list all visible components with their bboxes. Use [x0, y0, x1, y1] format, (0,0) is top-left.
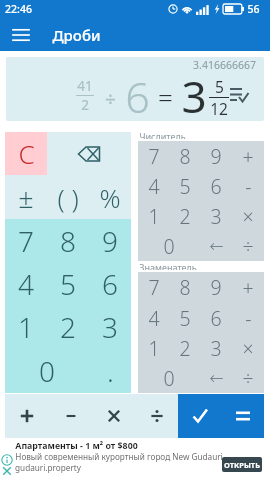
staticText: 4	[148, 305, 160, 332]
staticText: 5	[179, 305, 191, 332]
button[interactable]: Close ad	[1, 465, 13, 477]
button[interactable]: Multiply	[92, 394, 135, 438]
staticText: -	[245, 173, 252, 200]
button[interactable]: History	[230, 86, 250, 106]
button[interactable]: %	[89, 175, 131, 219]
staticText: 3	[210, 335, 222, 362]
staticText: ÷	[242, 365, 254, 392]
staticText: 6	[102, 265, 118, 303]
button[interactable]: .	[89, 349, 131, 393]
button[interactable]: 4	[138, 171, 169, 201]
staticText: 2	[60, 308, 76, 346]
button[interactable]: Minus	[49, 394, 92, 438]
staticText: 5	[215, 76, 224, 97]
button[interactable]: 4	[5, 262, 47, 305]
button[interactable]: ÷	[232, 231, 264, 261]
button[interactable]: 1	[138, 201, 169, 231]
staticText: 1	[18, 308, 34, 346]
button[interactable]: ÷	[232, 363, 264, 393]
button[interactable]: 1	[5, 305, 47, 349]
staticText: 8	[60, 222, 76, 260]
button[interactable]: Plus	[5, 394, 49, 438]
button[interactable]: 3	[200, 201, 232, 231]
button[interactable]: 8	[169, 141, 200, 171]
button[interactable]: 7	[138, 141, 169, 171]
button[interactable]: 0	[138, 231, 200, 261]
button[interactable]: 1	[138, 333, 169, 363]
staticText: 2	[81, 96, 89, 114]
button[interactable]: +	[232, 141, 264, 171]
staticText: ±	[18, 179, 34, 216]
button[interactable]: 9	[200, 141, 232, 171]
staticText: 0	[163, 365, 175, 392]
button[interactable]: ×	[232, 201, 264, 231]
button[interactable]: 0	[5, 349, 89, 393]
staticText: Новый современный курортный город New Gu…	[15, 451, 223, 462]
staticText: 22:46	[5, 2, 32, 16]
button[interactable]: 2	[47, 305, 89, 349]
staticText: 2	[179, 203, 191, 230]
staticText: ÷	[242, 233, 254, 260]
staticText: 6	[125, 67, 150, 121]
button[interactable]: 6	[89, 262, 131, 305]
button[interactable]: ±	[5, 175, 47, 219]
staticText: .	[107, 352, 114, 390]
button[interactable]: 5	[47, 262, 89, 305]
staticText: 9	[102, 222, 118, 260]
staticText: +	[242, 143, 254, 170]
button[interactable]: Menu	[8, 22, 34, 48]
staticText: ×	[242, 335, 254, 362]
button[interactable]: +	[232, 272, 264, 303]
button[interactable]: 0	[138, 363, 200, 393]
staticText: 7	[148, 274, 160, 301]
staticText: Знаменатель	[139, 261, 197, 270]
button[interactable]: Equals	[221, 394, 264, 438]
staticText: 5	[60, 265, 76, 303]
staticText: 6	[210, 173, 222, 200]
button[interactable]: Ad info	[1, 454, 13, 466]
staticText: 3.416666667	[193, 58, 256, 72]
button[interactable]: ( )	[47, 175, 89, 219]
button[interactable]: ОТКРЫТЬ	[222, 457, 262, 472]
button[interactable]: 7	[138, 272, 169, 303]
staticText: 3	[181, 66, 207, 121]
button[interactable]: Divide	[135, 394, 178, 438]
staticText: 7	[18, 222, 34, 260]
button[interactable]: 2	[169, 201, 200, 231]
staticText: 3	[102, 308, 118, 346]
staticText: 0	[163, 233, 175, 260]
button[interactable]: 3	[200, 333, 232, 363]
button[interactable]: 7	[5, 219, 47, 262]
button[interactable]: C	[5, 132, 47, 175]
button[interactable]: 9	[200, 272, 232, 303]
button[interactable]: Calculate	[178, 394, 221, 438]
staticText: ×	[242, 203, 254, 230]
staticText: +	[242, 274, 254, 301]
button[interactable]: 8	[47, 219, 89, 262]
button[interactable]: 9	[89, 219, 131, 262]
button[interactable]: 5	[169, 303, 200, 333]
button[interactable]: 3	[89, 305, 131, 349]
button[interactable]: 4	[138, 303, 169, 333]
button[interactable]: -	[232, 303, 264, 333]
staticText: 4	[18, 265, 34, 303]
staticText: ←	[209, 236, 224, 256]
button[interactable]: ×	[232, 333, 264, 363]
button[interactable]: 6	[200, 303, 232, 333]
staticText: 3	[210, 203, 222, 230]
staticText: 9	[210, 143, 222, 170]
button[interactable]: 8	[169, 272, 200, 303]
button[interactable]: Backspace	[47, 132, 131, 175]
button[interactable]: 5	[169, 171, 200, 201]
button[interactable]: ←	[200, 231, 232, 261]
staticText: 5	[179, 173, 191, 200]
button[interactable]: ←	[200, 363, 232, 393]
staticText: ( )	[57, 180, 79, 215]
staticText: =	[158, 79, 173, 114]
staticText: C	[18, 136, 35, 171]
button[interactable]: 6	[200, 171, 232, 201]
button[interactable]: -	[232, 171, 264, 201]
staticText: Апартаменты - 1 м² от $800	[15, 440, 138, 452]
staticText: ОТКРЫТЬ	[224, 460, 260, 470]
button[interactable]: 2	[169, 333, 200, 363]
